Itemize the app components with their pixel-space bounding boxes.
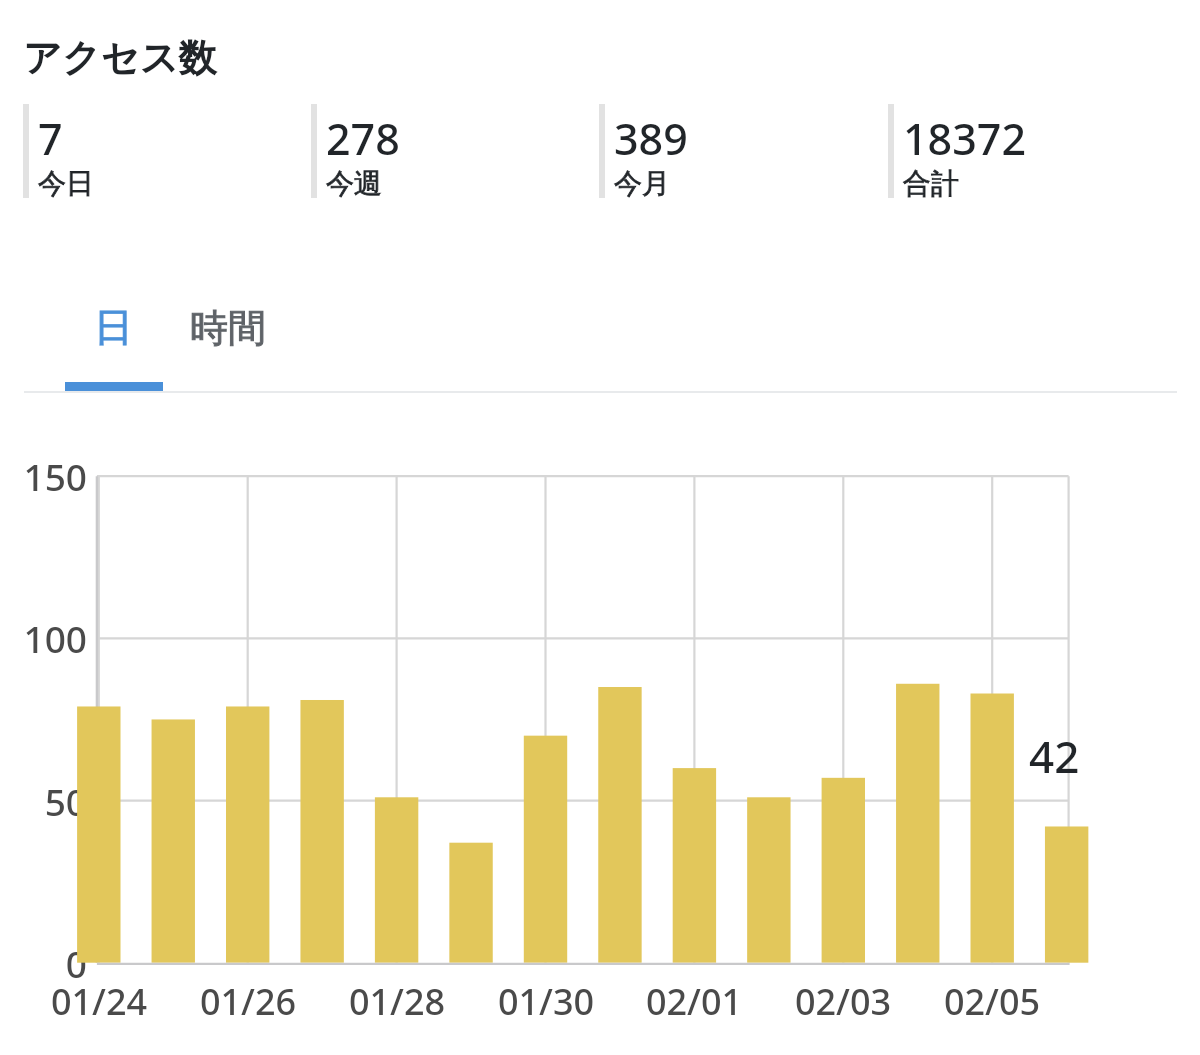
staticText: 今週 [326, 166, 382, 201]
staticText: 日 [94, 303, 133, 352]
button[interactable]: 時間 [163, 296, 293, 391]
staticText: 02/05 [922, 977, 1062, 1026]
staticText: 合計 [903, 166, 959, 201]
staticText: 時間 [190, 304, 266, 352]
staticText: 01/24 [29, 977, 169, 1026]
staticText: 合計 [903, 166, 959, 201]
staticText: 今日 [38, 166, 94, 201]
staticText: 今月 [614, 166, 670, 201]
staticText: 7 [38, 109, 63, 168]
staticText: 02/03 [773, 977, 913, 1026]
staticText: 01/30 [476, 977, 616, 1026]
staticText: 今週 [326, 166, 382, 201]
staticText: 時間 [190, 304, 266, 352]
staticText: 01/28 [327, 977, 467, 1026]
staticText: 18372 [903, 109, 1026, 168]
staticText: アクセス数 [23, 34, 217, 82]
staticText: 今月 [614, 166, 670, 201]
staticText: 389 [614, 109, 688, 168]
staticText: 278 [326, 109, 400, 168]
staticText: 42 [1029, 726, 1080, 786]
staticText: 0 [0, 938, 87, 988]
button[interactable]: 日 [65, 296, 163, 391]
staticText: 01/26 [178, 977, 318, 1026]
staticText: 100 [0, 613, 87, 663]
staticText: 日 [94, 303, 133, 352]
staticText: 150 [0, 451, 87, 501]
staticText: 今日 [38, 166, 94, 201]
staticText: 02/01 [624, 977, 764, 1026]
staticText: 50 [0, 776, 87, 826]
